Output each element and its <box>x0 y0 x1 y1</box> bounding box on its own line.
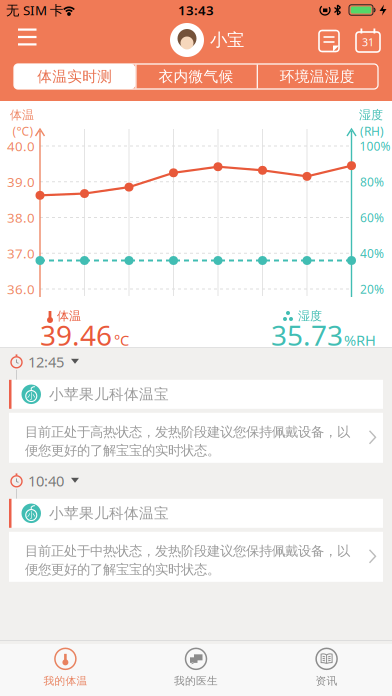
staticText: 40% <box>360 245 384 261</box>
staticText: 环境温湿度 <box>280 67 355 85</box>
staticText: 目前正处于中热状态，发热阶段建议您保持佩戴设备，以 便您更好的了解宝宝的实时状态… <box>25 543 350 578</box>
staticText: 湿度 <box>359 108 383 122</box>
staticText: 小苹果儿科体温宝 <box>49 385 169 403</box>
button[interactable]: 10:40 <box>0 473 392 489</box>
staticText: 12:45 <box>28 352 64 372</box>
staticText: 100% <box>359 138 390 154</box>
button[interactable]: 资讯 <box>261 641 392 692</box>
staticText: 37.0 <box>7 244 35 262</box>
staticText: 体温实时测 <box>37 67 112 85</box>
staticText: 资讯 <box>316 674 338 687</box>
staticText: 80% <box>360 174 384 190</box>
staticText: 体温 <box>57 309 81 323</box>
staticText: 39.46 <box>40 316 112 354</box>
staticText: 我的体温 <box>43 674 87 687</box>
staticText: (RH) <box>360 123 384 139</box>
button[interactable]: 我的体温 <box>0 641 131 692</box>
staticText: 35.73 <box>271 316 343 354</box>
staticText: 60% <box>360 209 384 225</box>
button[interactable]: 环境温湿度 <box>257 64 378 89</box>
staticText: 小宝 <box>210 29 244 51</box>
staticText: 衣内微气候 <box>158 67 233 85</box>
button[interactable]: 小 <box>9 380 383 409</box>
staticText: 我的医生 <box>174 674 218 687</box>
button[interactable]: 菜单 <box>0 17 54 61</box>
staticText: 无 SIM 卡 <box>6 1 63 19</box>
staticText: (°C) <box>12 123 33 139</box>
button[interactable]: 小 <box>9 499 383 528</box>
button[interactable]: 我的医生 <box>131 641 261 692</box>
staticText: 20% <box>360 281 384 297</box>
button[interactable]: 目前正处于中热状态，发热阶段建议您保持佩戴设备，以 便您更好的了解宝宝的实时状态… <box>9 532 383 582</box>
staticText: 小苹果儿科体温宝 <box>49 504 169 522</box>
button[interactable]: 日历 <box>348 19 388 63</box>
button[interactable]: 目前正处于高热状态，发热阶段建议您保持佩戴设备，以 便您更好的了解宝宝的实时状态… <box>9 413 383 463</box>
staticText: °C <box>114 330 129 350</box>
button[interactable]: 小宝 <box>155 19 255 63</box>
staticText: %RH <box>344 330 376 350</box>
staticText: 38.0 <box>7 209 35 226</box>
staticText: 31 <box>362 35 374 49</box>
button[interactable]: 12:45 <box>0 354 392 370</box>
staticText: 小 <box>27 510 35 520</box>
staticText: 体温 <box>10 108 34 122</box>
staticText: 40.0 <box>7 137 35 155</box>
button[interactable]: 记录 <box>309 19 349 63</box>
button[interactable]: 体温实时测 <box>14 64 135 89</box>
staticText: 36.0 <box>7 280 35 298</box>
staticText: 39.0 <box>7 173 35 191</box>
staticText: 10:40 <box>28 471 64 491</box>
staticText: 小 <box>27 391 35 401</box>
button[interactable]: 衣内微气候 <box>135 64 256 89</box>
staticText: 13:43 <box>178 1 214 19</box>
staticText: 目前正处于高热状态，发热阶段建议您保持佩戴设备，以 便您更好的了解宝宝的实时状态… <box>25 424 350 459</box>
staticText: 湿度 <box>298 309 322 323</box>
